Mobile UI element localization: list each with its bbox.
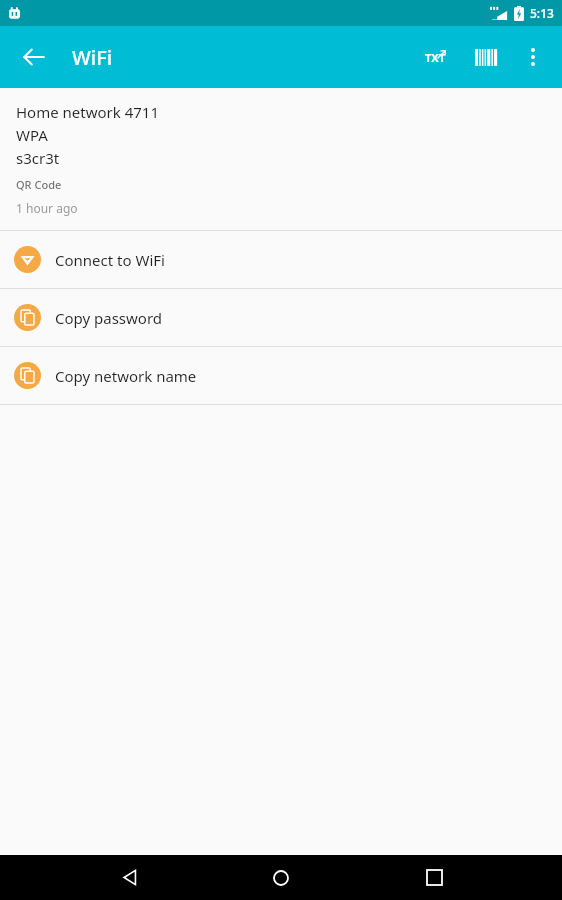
staticText: 5:13: [530, 5, 554, 21]
button[interactable]: Recent apps: [410, 855, 458, 900]
button[interactable]: Copy password: [0, 289, 562, 346]
button[interactable]: Back: [105, 855, 153, 900]
staticText: Connect to WiFi: [55, 250, 165, 270]
button[interactable]: Show barcode: [462, 34, 508, 80]
staticText: Home network 4711: [16, 102, 160, 122]
staticText: TXT: [425, 50, 446, 65]
button[interactable]: More options: [510, 34, 556, 80]
staticText: s3cr3t: [16, 148, 60, 168]
staticText: QR Code: [16, 177, 62, 192]
button[interactable]: Copy network name: [0, 347, 562, 404]
staticText: Copy network name: [55, 366, 197, 386]
staticText: Copy password: [55, 308, 163, 328]
button[interactable]: Home: [257, 855, 305, 900]
button[interactable]: Share as text: [412, 34, 458, 80]
staticText: 1 hour ago: [16, 200, 78, 216]
button[interactable]: Connect to WiFi: [0, 231, 562, 288]
button[interactable]: Back: [12, 35, 56, 79]
staticText: WPA: [16, 125, 48, 145]
staticText: WiFi: [72, 44, 113, 71]
